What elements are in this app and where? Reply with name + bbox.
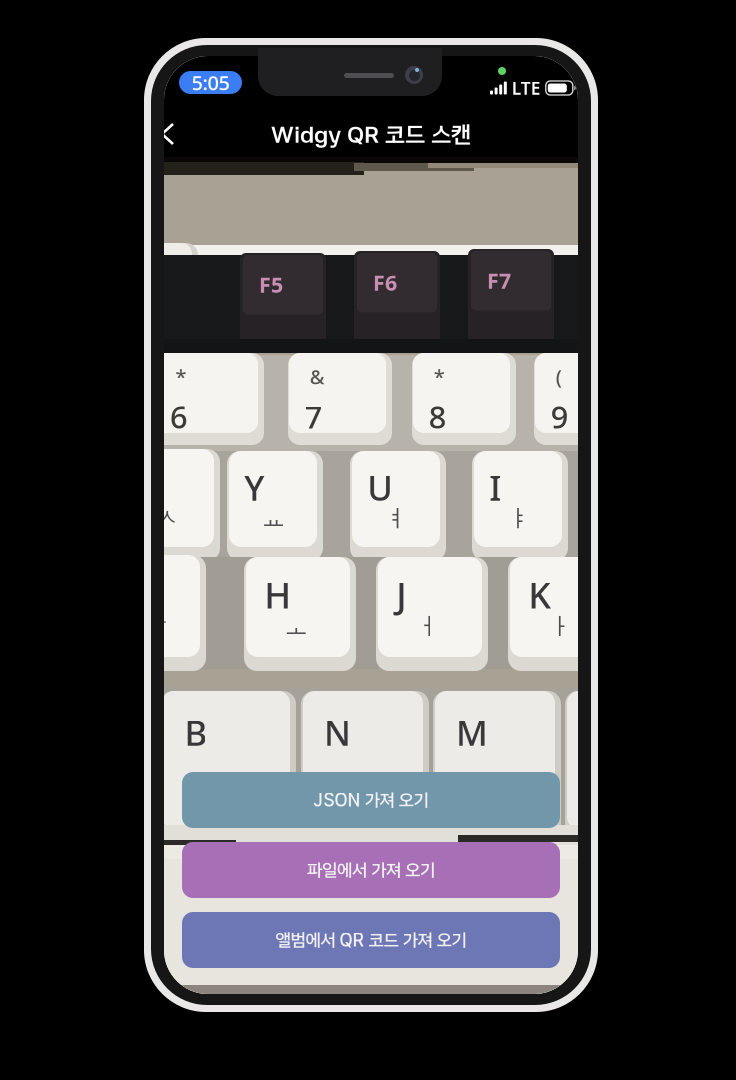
staticText: * xyxy=(434,363,445,390)
button[interactable]: Back xyxy=(155,112,189,156)
staticText: F6 xyxy=(373,268,397,297)
staticText: N xyxy=(324,709,351,755)
staticText: ㅎ xyxy=(146,611,170,640)
button[interactable]: 앨범에서 QR 코드 가져 오기 xyxy=(182,912,560,968)
staticText: U xyxy=(367,464,393,510)
staticText: ㅏ xyxy=(548,612,572,641)
staticText: ㅗ xyxy=(284,612,308,641)
staticText: K xyxy=(528,571,551,618)
button[interactable]: 파일에서 가져 오기 xyxy=(182,842,560,898)
staticText: Widgy QR 코드 스캔 xyxy=(271,120,471,148)
staticText: 5:05 xyxy=(191,69,229,96)
staticText: & xyxy=(310,363,325,390)
staticText: 7 xyxy=(305,396,323,437)
staticText: 파일에서 가져 오기 xyxy=(307,859,435,881)
staticText: 6 xyxy=(170,396,188,437)
staticText: H xyxy=(264,571,291,618)
staticText: 9 xyxy=(551,396,569,437)
staticText: M xyxy=(456,709,488,755)
staticText: Y xyxy=(244,464,264,510)
staticText: F5 xyxy=(259,270,283,299)
staticText: T xyxy=(136,462,155,508)
staticText: ㅓ xyxy=(416,612,440,641)
staticText: 8 xyxy=(429,396,447,437)
staticText: 앨범에서 QR 코드 가져 오기 xyxy=(275,929,466,951)
staticText: ㅅ xyxy=(155,503,179,532)
staticText: ㅛ xyxy=(262,504,286,533)
staticText: JSON 가져 오기 xyxy=(313,789,428,811)
staticText: B xyxy=(184,709,207,755)
button[interactable]: JSON 가져 오기 xyxy=(182,772,560,828)
staticText: LTE xyxy=(512,76,541,99)
staticText: * xyxy=(175,363,186,390)
staticText: ㅕ xyxy=(385,504,409,533)
staticText: ㅑ xyxy=(507,504,531,533)
staticText: J xyxy=(396,571,406,618)
staticText: I xyxy=(489,464,501,510)
staticText: G xyxy=(129,569,155,617)
staticText: ( xyxy=(556,363,562,390)
staticText: F7 xyxy=(487,266,511,295)
